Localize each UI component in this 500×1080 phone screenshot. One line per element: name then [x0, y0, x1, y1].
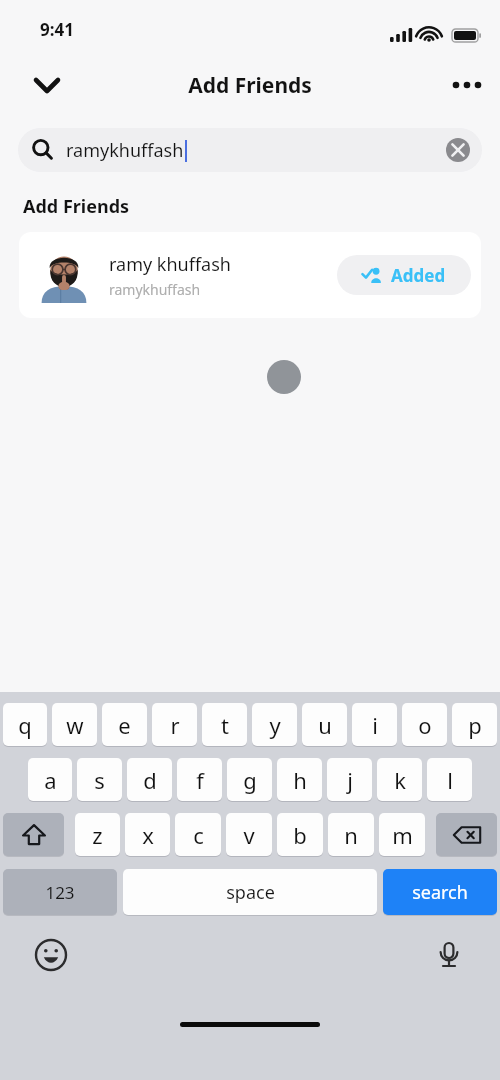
- staticText: t: [221, 710, 229, 740]
- button[interactable]: c: [175, 813, 221, 856]
- staticText: ramy khuffash: [109, 252, 231, 277]
- staticText: 9:41: [40, 18, 74, 41]
- staticText: Add Friends: [188, 71, 312, 100]
- staticText: ramykhuffash: [66, 138, 184, 163]
- staticText: s: [94, 765, 105, 795]
- staticText: x: [142, 820, 154, 850]
- button[interactable]: t: [202, 703, 247, 746]
- button[interactable]: x: [125, 813, 170, 856]
- staticText: d: [143, 765, 157, 795]
- staticText: f: [196, 765, 204, 795]
- button[interactable]: ramykhuffash: [18, 128, 482, 172]
- staticText: u: [318, 710, 332, 740]
- button[interactable]: l: [427, 758, 472, 801]
- button[interactable]: j: [327, 758, 372, 801]
- button[interactable]: a: [28, 758, 72, 801]
- button[interactable]: m: [379, 813, 425, 856]
- button[interactable]: u: [302, 703, 347, 746]
- staticText: o: [418, 710, 432, 740]
- button[interactable]: d: [127, 758, 172, 801]
- button[interactable]: y: [252, 703, 297, 746]
- button[interactable]: n: [328, 813, 374, 856]
- staticText: r: [170, 710, 180, 740]
- button[interactable]: g: [227, 758, 272, 801]
- button[interactable]: k: [377, 758, 422, 801]
- staticText: j: [347, 765, 353, 795]
- staticText: h: [293, 765, 307, 795]
- staticText: y: [269, 710, 281, 740]
- staticText: w: [66, 710, 84, 740]
- button[interactable]: b: [277, 813, 323, 856]
- button[interactable]: s: [77, 758, 122, 801]
- button[interactable]: Collapse: [24, 62, 70, 108]
- button[interactable]: f: [177, 758, 222, 801]
- button[interactable]: p: [452, 703, 497, 746]
- staticText: c: [193, 820, 204, 850]
- button[interactable]: Clear search: [446, 138, 470, 162]
- staticText: a: [44, 765, 57, 795]
- button[interactable]: Shift: [3, 813, 64, 856]
- staticText: p: [468, 710, 482, 740]
- staticText: q: [18, 710, 32, 740]
- button[interactable]: ramy khuffash: [19, 232, 481, 318]
- staticText: 123: [45, 881, 75, 904]
- staticText: m: [392, 820, 413, 850]
- staticText: space: [226, 880, 275, 905]
- button[interactable]: 123: [3, 869, 117, 915]
- staticText: e: [118, 710, 131, 740]
- staticText: z: [92, 820, 103, 850]
- button[interactable]: Delete: [436, 813, 497, 856]
- button[interactable]: o: [402, 703, 447, 746]
- staticText: l: [447, 765, 453, 795]
- staticText: k: [394, 765, 406, 795]
- staticText: Added: [391, 264, 446, 287]
- button[interactable]: q: [3, 703, 47, 746]
- staticText: ramykhuffash: [109, 280, 201, 299]
- button[interactable]: v: [226, 813, 272, 856]
- button[interactable]: Emoji keyboard: [34, 938, 68, 972]
- staticText: b: [293, 820, 307, 850]
- staticText: g: [243, 765, 257, 795]
- button[interactable]: More options: [444, 62, 490, 108]
- button[interactable]: i: [352, 703, 397, 746]
- button[interactable]: w: [52, 703, 97, 746]
- button[interactable]: h: [277, 758, 322, 801]
- staticText: v: [243, 820, 255, 850]
- staticText: n: [344, 820, 358, 850]
- button[interactable]: space: [123, 869, 377, 915]
- staticText: Add Friends: [23, 194, 130, 219]
- button[interactable]: search: [383, 869, 497, 915]
- staticText: search: [412, 880, 468, 905]
- button[interactable]: r: [152, 703, 197, 746]
- staticText: i: [372, 710, 378, 740]
- button[interactable]: z: [75, 813, 120, 856]
- button[interactable]: e: [102, 703, 147, 746]
- button[interactable]: Added: [337, 255, 471, 295]
- button[interactable]: Dictation: [432, 938, 466, 972]
